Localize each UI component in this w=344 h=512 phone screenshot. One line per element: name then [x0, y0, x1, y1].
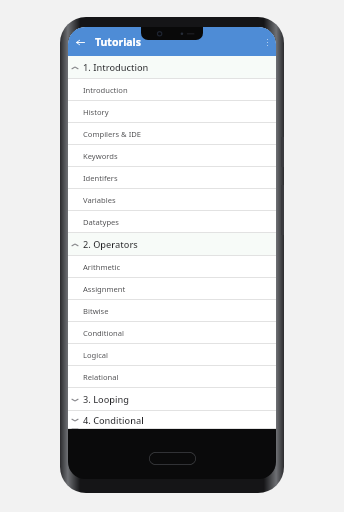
staticText: Conditional	[83, 328, 124, 338]
staticText: Arithmetic	[83, 262, 121, 272]
button[interactable]: Logical	[68, 344, 276, 366]
button[interactable]: Arithmetic	[68, 256, 276, 278]
staticText: Keywords	[83, 151, 118, 161]
button[interactable]: 1. Introduction	[68, 56, 276, 79]
staticText: Bitwise	[83, 306, 109, 316]
button[interactable]: More options	[260, 35, 274, 49]
button[interactable]: Assignment	[68, 278, 276, 300]
button[interactable]: Keywords	[68, 145, 276, 167]
button[interactable]: 3. Looping	[68, 388, 276, 411]
button[interactable]: Identifers	[68, 167, 276, 189]
button[interactable]: Relational	[68, 366, 276, 388]
button[interactable]: 4. Conditional	[68, 411, 276, 429]
staticText: Compilers & IDE	[83, 129, 141, 139]
staticText: History	[83, 107, 109, 117]
staticText: 2. Operators	[83, 238, 138, 251]
staticText: Tutorials	[95, 35, 142, 49]
staticText: 1. Introduction	[83, 61, 149, 74]
button[interactable]: Home	[149, 452, 196, 465]
staticText: Assignment	[83, 284, 126, 294]
button[interactable]: 2. Operators	[68, 233, 276, 256]
staticText: Variables	[83, 195, 116, 205]
button[interactable]: Compilers & IDE	[68, 123, 276, 145]
button[interactable]: History	[68, 101, 276, 123]
staticText: 4. Conditional	[83, 414, 144, 427]
button[interactable]: Conditional	[68, 322, 276, 344]
button[interactable]: Introduction	[68, 79, 276, 101]
staticText: Logical	[83, 350, 109, 360]
staticText: Relational	[83, 372, 119, 382]
staticText: Datatypes	[83, 217, 120, 227]
button[interactable]: Datatypes	[68, 211, 276, 233]
staticText: Identifers	[83, 173, 118, 183]
staticText: Introduction	[83, 85, 128, 95]
staticText: 3. Looping	[83, 393, 129, 406]
button[interactable]: Variables	[68, 189, 276, 211]
button[interactable]: Bitwise	[68, 300, 276, 322]
button[interactable]: Back	[72, 34, 88, 50]
